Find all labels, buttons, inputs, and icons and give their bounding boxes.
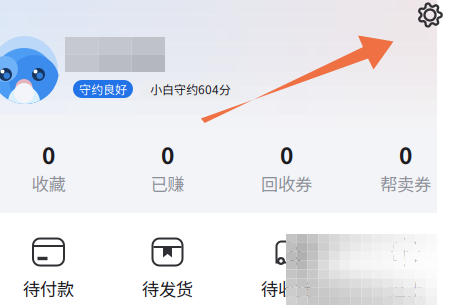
staticText: 帮卖券 (380, 171, 431, 196)
staticText: 收藏 (31, 171, 65, 196)
staticText: 回收券 (261, 171, 312, 196)
staticText: 0 (42, 138, 55, 171)
button[interactable]: 待发货 (108, 238, 227, 301)
staticText: 0 (399, 138, 412, 171)
staticText: 待收货 (261, 276, 312, 301)
button[interactable]: 守约良好 (73, 80, 133, 98)
button[interactable]: ¥ (346, 238, 450, 301)
staticText: 已赚 (150, 171, 184, 196)
staticText: 待发货 (142, 276, 193, 301)
button[interactable]: 待收货 (227, 238, 346, 301)
staticText: 0 (280, 138, 293, 171)
button[interactable]: Settings (417, 2, 443, 28)
staticText: 守约良好 (79, 80, 127, 98)
staticText: ¥ (400, 238, 410, 265)
button[interactable]: 小白守约604分 (140, 80, 241, 98)
button[interactable]: 0 (346, 138, 450, 196)
staticText: 0 (161, 138, 174, 171)
button[interactable]: 待付款 (0, 238, 108, 301)
button[interactable]: 0 (227, 138, 346, 196)
staticText: 退款 (388, 276, 422, 301)
staticText: 待付款 (23, 276, 74, 301)
button[interactable]: 0 (0, 138, 108, 196)
staticText: 小白守约604分 (150, 80, 231, 98)
button[interactable]: 0 (108, 138, 227, 196)
